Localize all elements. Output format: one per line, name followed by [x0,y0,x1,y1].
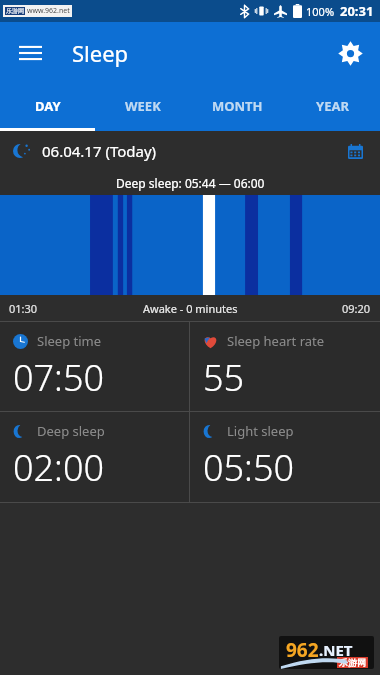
button[interactable]: MONTH [190,84,285,128]
staticText: 05:50 [203,443,295,492]
button[interactable]: WEEK [95,84,190,128]
staticText: 07:50 [13,353,105,402]
button[interactable]: Light sleep [190,412,380,502]
staticText: 01:30 [9,301,38,316]
staticText: .NET [319,640,353,660]
staticText: Deep sleep: 05:44 — 06:00 [116,175,265,191]
staticText: Light sleep [227,422,294,440]
staticText: MONTH [212,97,263,115]
button[interactable]: YEAR [285,84,380,128]
button[interactable]: Sleep time [0,322,189,411]
staticText: 100% [306,4,335,19]
staticText: 06.04.17 (Today) [42,141,157,161]
button[interactable]: Pick date [338,134,372,168]
staticText: www.962.net [27,6,70,16]
button[interactable]: Sleep heart rate [190,322,380,411]
button[interactable]: Sleep phases chart [0,195,380,295]
button[interactable]: Open navigation menu [10,33,50,73]
staticText: 乐游网 [6,7,24,15]
button[interactable]: Deep sleep [0,412,189,502]
button[interactable]: Settings [328,31,372,75]
staticText: Deep sleep [37,422,105,440]
button[interactable]: 06.04.17 (Today) [0,131,380,171]
staticText: 20:31 [340,2,374,20]
staticText: Sleep heart rate [227,332,325,350]
staticText: Awake - 0 minutes [143,301,238,316]
button[interactable]: DAY [0,84,95,128]
staticText: Sleep time [37,332,102,350]
staticText: WEEK [125,97,161,115]
staticText: Sleep [72,38,129,68]
staticText: 55 [203,353,245,402]
staticText: YEAR [316,97,349,115]
staticText: 02:00 [13,443,105,492]
staticText: 09:20 [342,301,371,316]
staticText: DAY [35,97,61,115]
staticText: 962 [286,637,319,663]
staticText: 乐游网 [339,657,366,668]
